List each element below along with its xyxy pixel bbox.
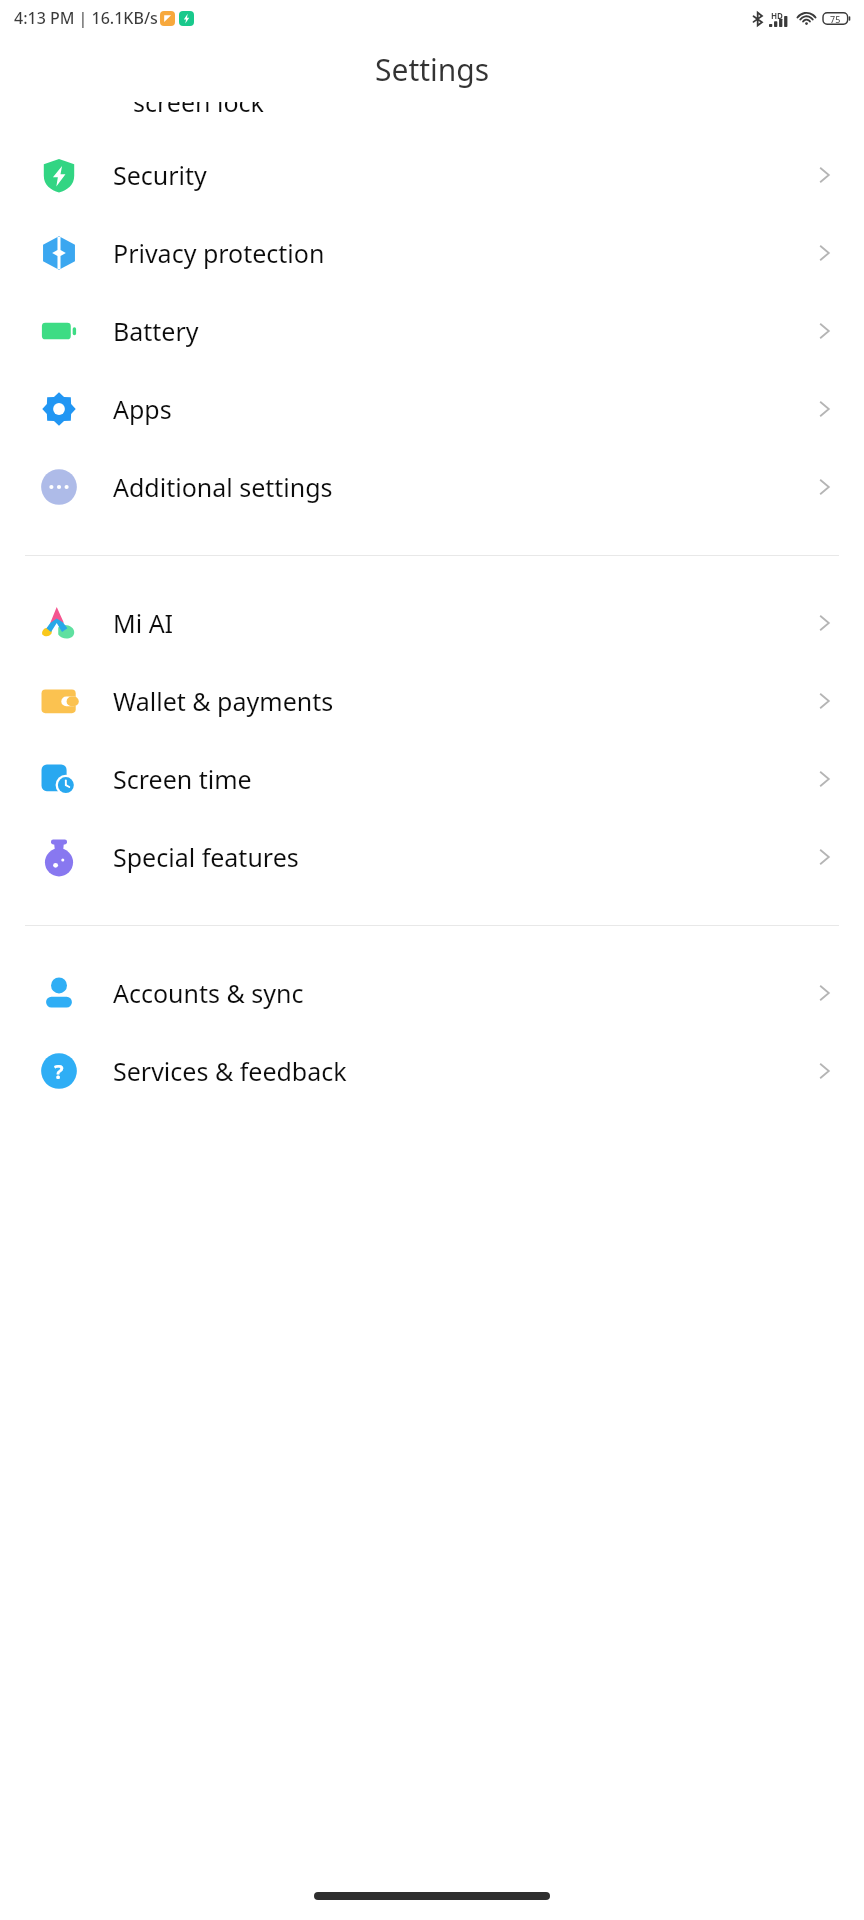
staticText: 75 — [830, 13, 841, 25]
button[interactable]: Battery — [0, 292, 864, 370]
staticText: Apps — [113, 392, 812, 426]
staticText: Services & feedback — [113, 1054, 812, 1088]
staticText: Settings — [375, 49, 490, 90]
button[interactable]: Accounts and sync — [0, 954, 864, 1032]
staticText: Privacy protection — [113, 236, 812, 270]
button[interactable]: Mi AI — [0, 584, 864, 662]
button[interactable]: Additional settings — [0, 448, 864, 526]
button[interactable]: Privacy protection — [0, 214, 864, 292]
staticText: Battery — [113, 314, 812, 348]
staticText: ? — [54, 1058, 64, 1085]
staticText: Mi AI — [113, 606, 812, 640]
button[interactable]: Screen time — [0, 740, 864, 818]
staticText: Special features — [113, 840, 812, 874]
staticText: Security — [113, 158, 812, 192]
staticText: Accounts & sync — [113, 976, 812, 1010]
staticText: 4:13 PM | 16.1KB/s — [14, 7, 158, 29]
button[interactable]: Special features — [0, 818, 864, 896]
staticText: screen lock — [133, 102, 264, 119]
button[interactable]: Apps — [0, 370, 864, 448]
staticText: HD — [771, 10, 783, 21]
staticText: Additional settings — [113, 470, 812, 504]
button[interactable]: Services and feedback — [0, 1032, 864, 1110]
button[interactable]: Wallet and payments — [0, 662, 864, 740]
staticText: Screen time — [113, 762, 812, 796]
button[interactable]: Security — [0, 136, 864, 214]
staticText: Wallet & payments — [113, 684, 812, 718]
